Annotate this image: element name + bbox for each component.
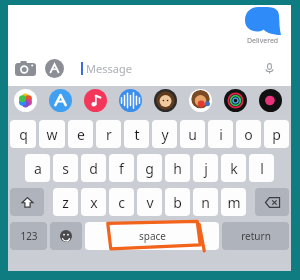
button[interactable]: y [152,120,177,148]
staticText: h [173,159,182,178]
staticText: space [139,229,166,243]
staticText: j [204,159,208,178]
other: Dictate [264,63,275,74]
button[interactable]: g [137,154,162,182]
button[interactable]: App icon [259,89,282,112]
button[interactable]: j [193,154,218,182]
button[interactable]: App icon [154,89,177,112]
staticText: a [34,159,42,178]
button[interactable]: k [221,154,246,182]
button[interactable]: x [81,188,106,216]
button[interactable]: App icon [189,89,212,112]
button[interactable]: return [222,222,289,250]
button[interactable]: 123 [10,222,47,250]
button[interactable]: App icon [224,89,247,112]
staticText: f [119,159,124,178]
button[interactable]: t [124,120,149,148]
button[interactable]: Sent message bubble [245,7,281,35]
button[interactable]: o [236,120,261,148]
staticText: y [161,125,169,144]
staticText: s [62,159,69,178]
button[interactable]: Backspace [255,188,289,216]
staticText: e [77,125,85,144]
button[interactable]: Camera [15,58,36,79]
staticText: q [19,125,28,144]
button[interactable]: App icon [14,89,37,112]
button[interactable]: App icon [119,89,142,112]
staticText: i [219,125,223,144]
button[interactable]: App icon [84,89,107,112]
button[interactable]: v [137,188,162,216]
button[interactable]: a [25,154,50,182]
staticText: k [230,159,238,178]
staticText: t [134,125,140,144]
button[interactable]: Emoji [50,222,82,250]
staticText: x [90,193,98,212]
button[interactable]: e [68,120,93,148]
button[interactable]: Shift [10,188,44,216]
button[interactable]: App icon [49,89,72,112]
staticText: n [201,193,210,212]
button[interactable]: space [85,222,219,250]
staticText: c [118,193,125,212]
button[interactable]: d [81,154,106,182]
button[interactable]: q [10,120,36,148]
staticText: o [244,125,253,144]
button[interactable]: z [53,188,78,216]
button[interactable]: h [165,154,190,182]
staticText: 123 [20,229,38,243]
button[interactable]: b [165,188,190,216]
button[interactable]: w [39,120,65,148]
staticText: r [106,125,112,144]
staticText: w [46,125,58,144]
staticText: b [173,193,182,212]
button[interactable]: Apps [45,59,64,78]
staticText: v [146,193,154,212]
staticText: l [260,159,264,178]
staticText: return [241,229,271,243]
button[interactable]: f [109,154,134,182]
button[interactable]: Message [73,56,283,80]
staticText: p [272,125,281,144]
staticText: g [145,159,154,178]
button[interactable]: l [249,154,274,182]
button[interactable]: n [193,188,218,216]
staticText: m [227,193,241,212]
button[interactable]: p [264,120,289,148]
staticText: z [62,193,69,212]
staticText: u [188,125,197,144]
button[interactable]: r [96,120,121,148]
staticText: d [89,159,98,178]
staticText: Delivered [247,36,279,46]
button[interactable]: u [180,120,205,148]
button[interactable]: c [109,188,134,216]
staticText: Message [86,61,132,76]
button[interactable]: m [221,188,246,216]
button[interactable]: i [208,120,233,148]
button[interactable]: s [53,154,78,182]
